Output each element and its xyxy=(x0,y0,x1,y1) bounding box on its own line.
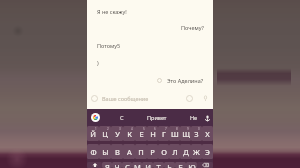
staticText: А xyxy=(127,147,132,157)
button[interactable]: Camera xyxy=(185,94,194,103)
staticText: З xyxy=(194,129,199,139)
staticText: Ш xyxy=(171,129,179,139)
button[interactable]: Т xyxy=(153,162,164,168)
button[interactable]: Ю xyxy=(186,162,197,168)
staticText: Б xyxy=(178,162,183,168)
staticText: Привет xyxy=(147,114,167,121)
staticText: 5 xyxy=(143,127,145,131)
staticText: Х xyxy=(205,129,210,139)
staticText: Р xyxy=(150,147,155,157)
staticText: Ф xyxy=(90,147,97,157)
button[interactable]: Shift xyxy=(87,162,102,168)
staticText: Й xyxy=(90,129,96,139)
staticText: Л xyxy=(172,147,178,157)
button[interactable]: Ч xyxy=(112,162,122,168)
staticText: 3 xyxy=(119,127,121,131)
staticText: Ч xyxy=(114,162,120,168)
staticText: Д xyxy=(183,147,189,157)
button[interactable]: Не xyxy=(186,109,202,126)
button[interactable]: Ш xyxy=(169,126,180,141)
staticText: 9 xyxy=(187,127,189,131)
button[interactable]: Привет xyxy=(144,109,170,126)
staticText: 4 xyxy=(131,127,133,131)
button[interactable]: Р xyxy=(147,144,158,159)
button[interactable]: Ж xyxy=(191,144,202,159)
staticText: Потому5 xyxy=(97,42,121,49)
button[interactable]: Э xyxy=(202,144,213,159)
staticText: Не xyxy=(190,114,198,121)
button[interactable]: Ф xyxy=(87,144,99,159)
button[interactable]: Microphone xyxy=(201,94,210,103)
staticText: Г xyxy=(162,129,166,139)
staticText: Это Аделина? xyxy=(167,77,204,84)
staticText: Ж xyxy=(193,147,200,157)
staticText: Н xyxy=(150,129,156,139)
staticText: Ваше сообщение xyxy=(102,95,149,102)
staticText: М xyxy=(134,162,141,168)
button[interactable]: В xyxy=(111,144,123,159)
button[interactable]: Н xyxy=(147,126,158,141)
button[interactable]: Ы xyxy=(99,144,111,159)
button[interactable]: У xyxy=(111,126,123,141)
button[interactable]: С xyxy=(113,109,131,126)
staticText: С xyxy=(125,162,130,168)
button[interactable]: З xyxy=(191,126,202,141)
button[interactable]: Voice input xyxy=(202,113,212,123)
staticText: П xyxy=(138,147,144,157)
button[interactable]: О xyxy=(158,144,169,159)
staticText: ) xyxy=(97,59,99,66)
staticText: Щ xyxy=(182,129,190,139)
button[interactable]: Google xyxy=(91,113,100,122)
staticText: У xyxy=(115,129,120,139)
staticText: Я не скажу! xyxy=(97,8,127,15)
button[interactable]: Д xyxy=(180,144,191,159)
staticText: Ц xyxy=(102,129,108,139)
staticText: 7 xyxy=(165,127,167,131)
staticText: И xyxy=(145,162,151,168)
staticText: В xyxy=(115,147,120,157)
button[interactable]: Ь xyxy=(164,162,175,168)
button[interactable]: Е xyxy=(135,126,147,141)
button[interactable]: Backspace xyxy=(197,162,213,168)
staticText: Ы xyxy=(102,147,109,157)
staticText: 6 xyxy=(154,127,156,131)
button[interactable]: М xyxy=(132,162,142,168)
staticText: С xyxy=(120,114,124,121)
staticText: Э xyxy=(205,147,210,157)
staticText: Т xyxy=(156,162,161,168)
button[interactable]: Щ xyxy=(180,126,191,141)
staticText: 2 xyxy=(107,127,109,131)
button[interactable]: И xyxy=(142,162,153,168)
staticText: Е xyxy=(139,129,144,139)
staticText: Ь xyxy=(167,162,172,168)
button[interactable]: П xyxy=(135,144,147,159)
button[interactable]: Л xyxy=(169,144,180,159)
button[interactable]: К xyxy=(123,126,135,141)
button[interactable]: Я xyxy=(102,162,112,168)
staticText: Я xyxy=(105,162,110,168)
button[interactable]: С xyxy=(122,162,132,168)
staticText: К xyxy=(127,129,132,139)
button[interactable]: Б xyxy=(175,162,186,168)
staticText: О xyxy=(161,147,167,157)
button[interactable]: Emoji xyxy=(90,94,99,103)
staticText: Почему? xyxy=(181,24,204,31)
button[interactable]: Й xyxy=(87,126,99,141)
button[interactable]: А xyxy=(123,144,135,159)
staticText: 0 xyxy=(198,127,200,131)
button[interactable]: Г xyxy=(158,126,169,141)
button[interactable]: Ц xyxy=(99,126,111,141)
staticText: Ю xyxy=(188,162,196,168)
staticText: 8 xyxy=(176,127,178,131)
staticText: 1 xyxy=(95,127,97,131)
button[interactable]: Х xyxy=(202,126,213,141)
